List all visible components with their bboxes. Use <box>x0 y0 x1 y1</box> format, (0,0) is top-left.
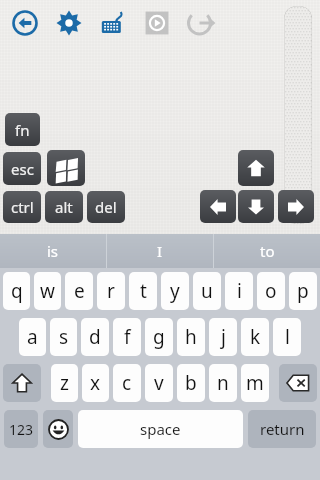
staticText: r <box>107 278 115 304</box>
button[interactable]: esc <box>3 152 41 185</box>
button[interactable]: is <box>0 234 106 268</box>
staticText: q <box>11 278 23 304</box>
staticText: j <box>221 324 226 350</box>
staticText: z <box>60 370 69 396</box>
button[interactable]: s <box>50 318 77 356</box>
button[interactable]: space <box>78 410 243 448</box>
staticText: l <box>285 324 290 350</box>
button[interactable]: c <box>113 364 141 402</box>
button[interactable]: Right <box>278 190 314 223</box>
button[interactable]: Left <box>200 190 236 223</box>
button[interactable]: n <box>209 364 237 402</box>
button[interactable]: Exit <box>186 8 216 38</box>
button[interactable]: Down <box>238 190 274 223</box>
button[interactable]: h <box>177 318 205 356</box>
staticText: to <box>260 241 275 261</box>
button[interactable]: Keyboard <box>98 8 128 38</box>
staticText: del <box>95 197 117 217</box>
button[interactable]: k <box>241 318 269 356</box>
staticText: 123 <box>9 420 34 439</box>
button[interactable]: Shift <box>3 364 41 402</box>
button[interactable]: o <box>257 272 285 310</box>
staticText: o <box>265 278 277 304</box>
staticText: f <box>124 324 131 350</box>
staticText: k <box>250 324 261 350</box>
staticText: t <box>140 278 147 304</box>
button[interactable]: z <box>51 364 78 402</box>
button[interactable]: Windows <box>47 150 85 186</box>
staticText: alt <box>55 197 73 217</box>
button[interactable]: p <box>289 272 317 310</box>
staticText: i <box>237 278 242 304</box>
button[interactable]: f <box>113 318 141 356</box>
staticText: ctrl <box>11 197 34 217</box>
staticText: p <box>297 278 309 304</box>
button[interactable]: return <box>248 410 316 448</box>
button[interactable]: u <box>193 272 221 310</box>
button[interactable]: to <box>214 234 320 268</box>
staticText: is <box>47 241 59 261</box>
button[interactable]: Up <box>238 150 274 186</box>
staticText: I <box>157 241 163 261</box>
staticText: d <box>89 324 101 350</box>
staticText: u <box>201 278 213 304</box>
staticText: fn <box>15 120 30 140</box>
staticText: b <box>185 370 197 396</box>
staticText: w <box>40 278 55 304</box>
button[interactable]: v <box>145 364 173 402</box>
staticText: c <box>122 370 132 396</box>
button[interactable]: b <box>177 364 205 402</box>
button[interactable]: Backspace <box>279 364 317 402</box>
button[interactable]: d <box>81 318 109 356</box>
staticText: n <box>217 370 229 396</box>
button[interactable]: ctrl <box>3 191 41 223</box>
button[interactable]: del <box>87 191 125 223</box>
button[interactable]: i <box>225 272 253 310</box>
staticText: space <box>140 419 181 439</box>
button[interactable]: r <box>97 272 125 310</box>
button[interactable]: m <box>241 364 269 402</box>
button[interactable]: l <box>273 318 301 356</box>
button[interactable]: Back <box>10 8 40 38</box>
staticText: e <box>74 278 85 304</box>
button[interactable]: q <box>3 272 30 310</box>
staticText: a <box>27 324 38 350</box>
staticText: s <box>59 324 69 350</box>
staticText: v <box>154 370 164 396</box>
button[interactable]: Emoji <box>43 410 73 448</box>
button[interactable]: x <box>82 364 109 402</box>
staticText: x <box>90 370 101 396</box>
staticText: h <box>185 324 197 350</box>
staticText: esc <box>11 159 34 179</box>
button[interactable]: g <box>145 318 173 356</box>
button[interactable]: alt <box>45 191 83 223</box>
button[interactable]: I <box>107 234 213 268</box>
button[interactable]: e <box>65 272 93 310</box>
staticText: y <box>170 278 180 304</box>
button[interactable]: a <box>19 318 46 356</box>
button[interactable]: fn <box>5 113 40 146</box>
button[interactable]: y <box>161 272 189 310</box>
button[interactable]: w <box>34 272 61 310</box>
staticText: return <box>260 419 305 439</box>
staticText: m <box>246 370 264 396</box>
staticText: g <box>153 324 165 350</box>
button[interactable]: t <box>129 272 157 310</box>
button[interactable]: 123 <box>4 410 38 448</box>
button[interactable]: Settings <box>54 8 84 38</box>
button[interactable]: j <box>209 318 237 356</box>
button[interactable]: Play <box>142 8 172 38</box>
